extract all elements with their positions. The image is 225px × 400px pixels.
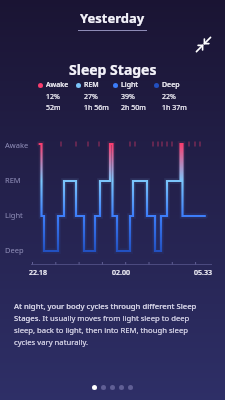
staticText: At night, your body cycles through diffe…: [14, 301, 210, 347]
staticText: 22.18: [29, 268, 47, 278]
staticText: 52m: [46, 103, 61, 113]
staticText: 05.33: [194, 268, 212, 278]
staticText: Yesterday: [80, 9, 145, 27]
staticText: 12%: [46, 92, 60, 102]
staticText: Deep: [5, 245, 24, 255]
staticText: 1h 37m: [162, 103, 187, 113]
staticText: 22%: [162, 92, 176, 102]
staticText: Sleep Stages: [69, 60, 157, 79]
staticText: 2h 50m: [121, 103, 146, 113]
staticText: REM: [5, 175, 21, 185]
staticText: 39%: [121, 92, 135, 102]
staticText: 1h 56m: [84, 103, 109, 113]
staticText: Light: [5, 210, 23, 220]
staticText: Awake: [5, 140, 29, 150]
staticText: 27%: [84, 92, 98, 102]
staticText: Deep: [162, 80, 180, 90]
button[interactable]: Collapse: [196, 37, 211, 52]
staticText: Light: [121, 80, 139, 90]
staticText: 02.00: [112, 268, 130, 278]
staticText: Awake: [46, 80, 69, 90]
staticText: REM: [84, 80, 99, 90]
